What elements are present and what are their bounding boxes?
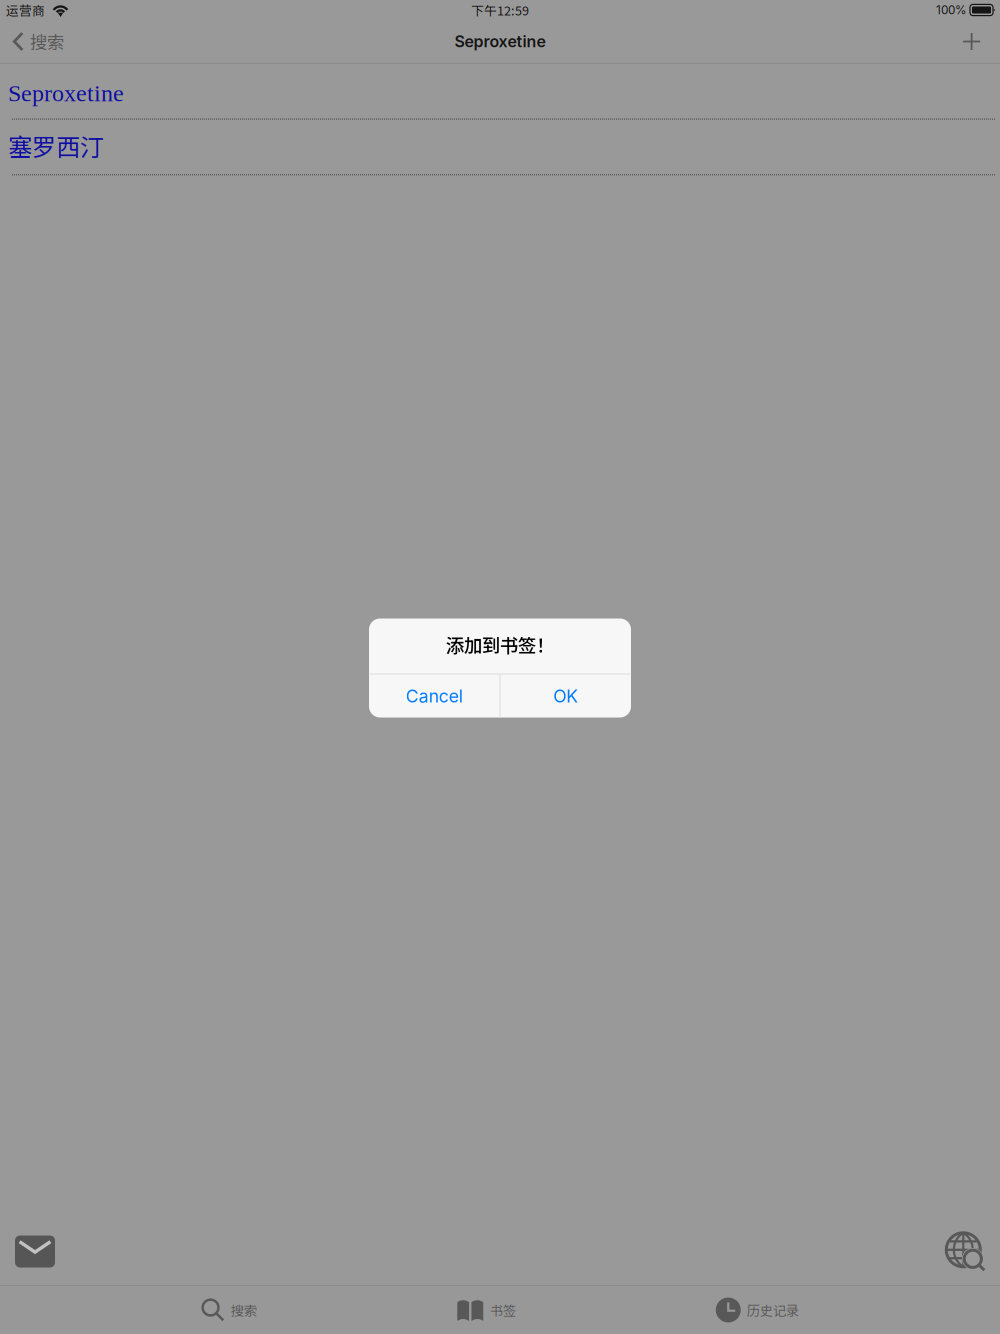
button[interactable]: OK xyxy=(500,674,631,717)
staticText: Seproxetine xyxy=(8,80,124,107)
staticText: 运营商 xyxy=(6,1,45,19)
staticText: Seproxetine xyxy=(454,32,545,51)
button[interactable]: 历史记录 xyxy=(716,1286,799,1333)
staticText: 塞罗西汀 xyxy=(8,128,104,163)
staticText: 100% xyxy=(936,3,967,17)
staticText: 书签 xyxy=(490,1300,516,1320)
button[interactable]: 书签 xyxy=(457,1288,516,1332)
staticText: 搜索 xyxy=(231,1300,257,1320)
button[interactable]: 搜索 xyxy=(0,20,76,63)
staticText: 下午12:59 xyxy=(471,1,529,19)
button[interactable]: Search the web xyxy=(937,1228,997,1280)
staticText: OK xyxy=(553,685,578,707)
button[interactable]: 搜索 xyxy=(201,1287,257,1333)
button[interactable]: Email xyxy=(0,1223,70,1279)
staticText: 搜索 xyxy=(30,29,64,54)
staticText: Cancel xyxy=(406,685,463,707)
button[interactable]: Cancel xyxy=(369,674,499,717)
staticText: 历史记录 xyxy=(747,1300,799,1320)
button[interactable]: Add bookmark xyxy=(949,20,1000,63)
staticText: 添加到书签！ xyxy=(446,631,554,658)
